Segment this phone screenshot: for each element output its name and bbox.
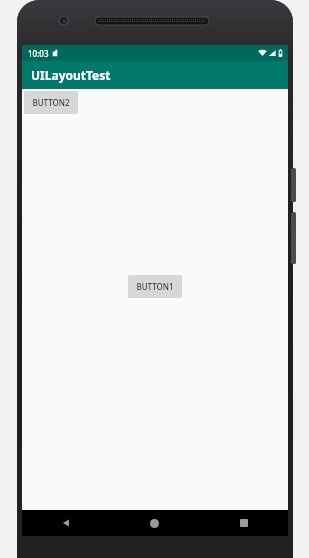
staticText: BUTTON2 bbox=[32, 97, 70, 108]
button[interactable]: BUTTON1 bbox=[128, 275, 182, 298]
button[interactable]: Recent apps bbox=[199, 510, 288, 536]
staticText: UILayoutTest bbox=[31, 67, 111, 83]
staticText: BUTTON1 bbox=[136, 281, 174, 292]
staticText: 10:03 bbox=[28, 48, 49, 59]
button[interactable]: Home bbox=[110, 510, 199, 536]
button[interactable]: BUTTON2 bbox=[24, 91, 78, 114]
button[interactable]: Back bbox=[22, 510, 110, 536]
